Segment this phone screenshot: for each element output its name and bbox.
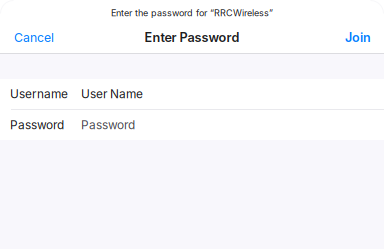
staticText: User Name [81, 87, 143, 101]
staticText: Enter Password [144, 30, 239, 45]
staticText: Password [81, 118, 135, 132]
button[interactable]: Password [0, 110, 384, 140]
staticText: Cancel [14, 30, 54, 45]
button[interactable]: Username [0, 79, 384, 109]
staticText: Username [10, 87, 68, 101]
button[interactable]: Join [335, 22, 384, 53]
staticText: Enter the password for “RRCWireless” [111, 7, 273, 18]
button[interactable]: Cancel [0, 22, 64, 53]
staticText: Password [10, 118, 64, 132]
staticText: Join [345, 30, 371, 45]
